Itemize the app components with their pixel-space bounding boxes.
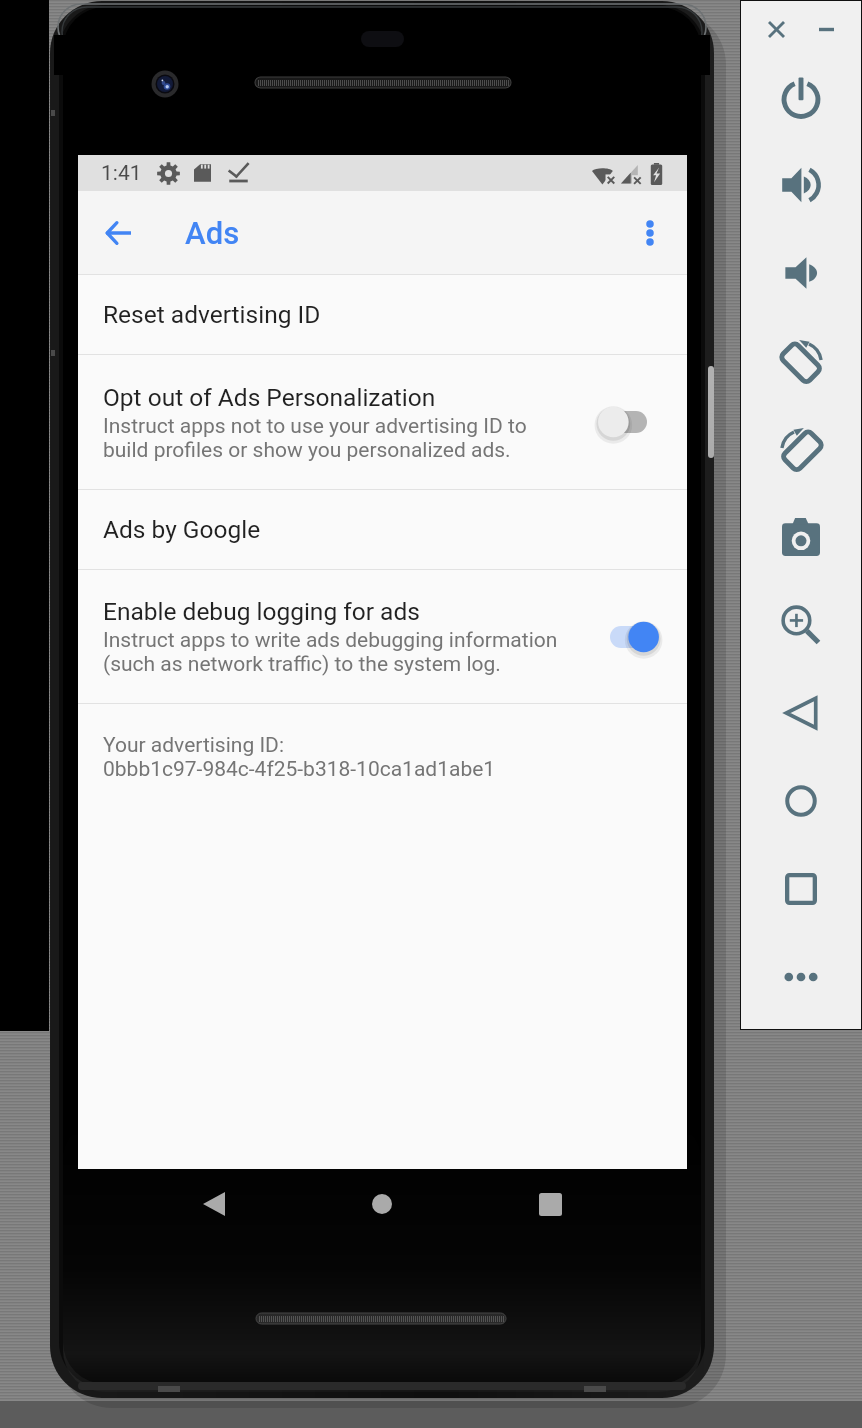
staticText: Your advertising ID: 0bbb1c97-984c-4f25-… <box>103 733 496 781</box>
button[interactable]: Power <box>741 53 861 141</box>
staticText: Instruct apps not to use your advertisin… <box>103 414 527 462</box>
button[interactable]: Disabled <box>597 355 687 489</box>
button[interactable]: Rotate right <box>741 405 861 493</box>
button[interactable]: Take screenshot <box>741 493 861 581</box>
button[interactable]: Minimize <box>809 12 843 46</box>
button[interactable]: Enabled <box>597 570 687 703</box>
button[interactable]: Home <box>298 1167 466 1241</box>
button[interactable]: Back <box>130 1167 298 1241</box>
staticText: Ads <box>185 215 240 251</box>
button[interactable]: Navigate up <box>91 205 147 261</box>
button[interactable]: Enable debug logging for ads <box>78 570 687 703</box>
button[interactable]: Overview <box>741 845 861 933</box>
button[interactable]: Back <box>741 669 861 757</box>
button[interactable]: More options <box>623 206 677 260</box>
staticText: Reset advertising ID <box>103 300 321 329</box>
staticText: Enable debug logging for ads <box>103 597 420 626</box>
button[interactable]: Volume down <box>741 229 861 317</box>
button[interactable]: Close <box>759 12 793 46</box>
button[interactable]: Recent apps <box>466 1167 634 1241</box>
staticText: Instruct apps to write ads debugging inf… <box>103 628 558 676</box>
staticText: Opt out of Ads Personalization <box>103 383 436 412</box>
button[interactable]: Reset advertising ID <box>78 275 687 354</box>
button[interactable]: Ads by Google <box>78 490 687 569</box>
button[interactable]: Extended controls <box>741 933 861 1021</box>
button[interactable]: Rotate left <box>741 317 861 405</box>
staticText: 1:41 <box>101 161 142 186</box>
button[interactable]: Opt out of Ads Personalization <box>78 355 687 489</box>
button[interactable]: Home <box>741 757 861 845</box>
button[interactable]: Zoom <box>741 581 861 669</box>
button[interactable]: Volume up <box>741 141 861 229</box>
staticText: Ads by Google <box>103 515 261 544</box>
